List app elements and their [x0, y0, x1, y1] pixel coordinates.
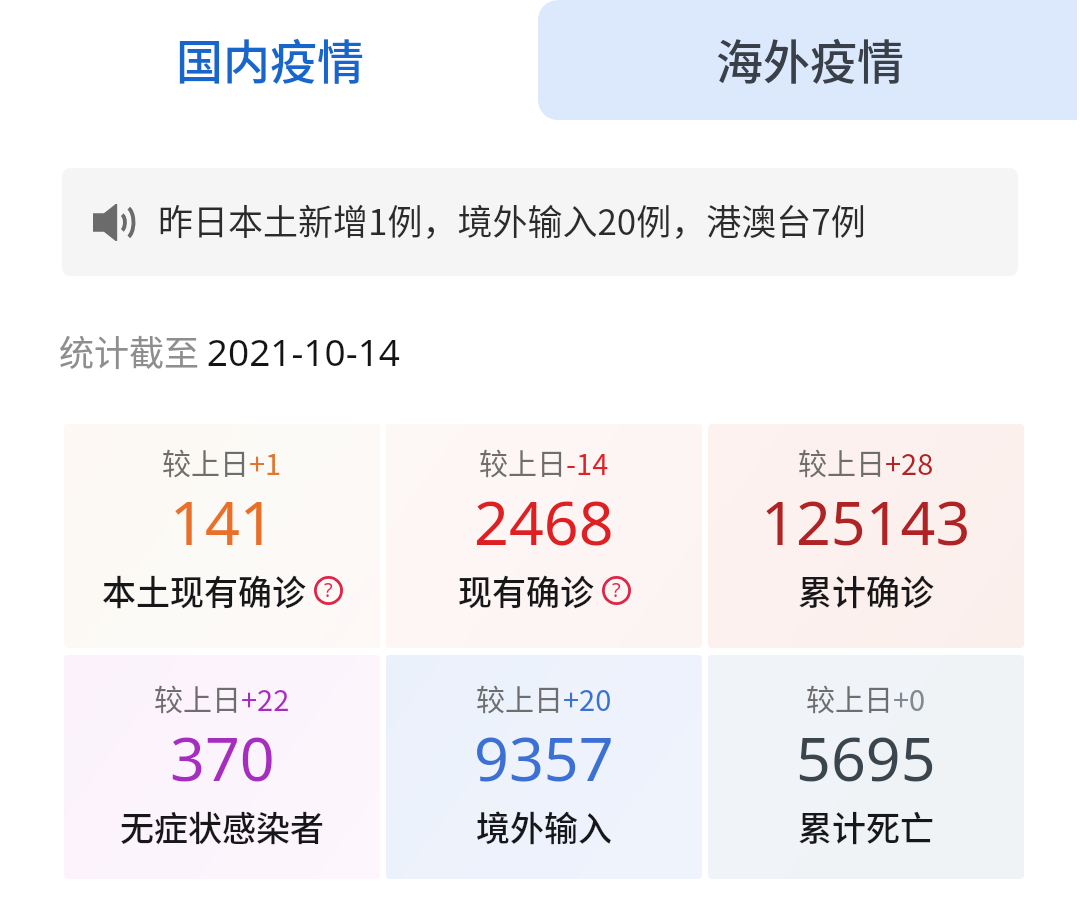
- button[interactable]: 较上日+0: [708, 655, 1024, 879]
- staticText: 370: [170, 716, 275, 799]
- staticText: ?: [324, 576, 333, 603]
- staticText: 较上日+28: [798, 441, 934, 483]
- staticText: 141: [170, 480, 275, 563]
- staticText: 较上日-14: [479, 441, 609, 483]
- button[interactable]: 较上日+20: [386, 655, 702, 879]
- staticText: 5695: [796, 716, 936, 799]
- staticText: 海外疫情: [716, 24, 904, 92]
- staticText: 累计死亡: [798, 802, 934, 851]
- staticText: 本土现有确诊: [102, 566, 306, 615]
- button[interactable]: 较上日-14: [386, 424, 702, 648]
- staticText: 国内疫情: [176, 24, 364, 92]
- staticText: 无症状感染者: [120, 802, 324, 851]
- staticText: 9357: [474, 716, 614, 799]
- staticText: 境外输入: [476, 802, 612, 851]
- staticText: 昨日本土新增1例，境外输入20例，港澳台7例: [158, 194, 866, 245]
- button[interactable]: 较上日+1: [64, 424, 380, 648]
- staticText: 2468: [474, 480, 614, 563]
- staticText: 较上日+1: [162, 441, 282, 483]
- button[interactable]: 较上日+28: [708, 424, 1024, 648]
- button[interactable]: Announcement: [62, 168, 1018, 276]
- button[interactable]: 国内疫情: [0, 0, 538, 120]
- staticText: 累计确诊: [798, 566, 934, 615]
- other: Announcement: [93, 204, 132, 241]
- button[interactable]: 海外疫情: [538, 0, 1077, 120]
- button[interactable]: 较上日+22: [64, 655, 380, 879]
- staticText: 较上日+20: [476, 677, 612, 719]
- staticText: ?: [612, 576, 621, 603]
- staticText: 较上日+0: [806, 677, 926, 719]
- staticText: 125143: [761, 480, 971, 563]
- staticText: 统计截至 2021-10-14: [59, 325, 400, 376]
- staticText: 较上日+22: [154, 677, 290, 719]
- staticText: 现有确诊: [458, 566, 594, 615]
